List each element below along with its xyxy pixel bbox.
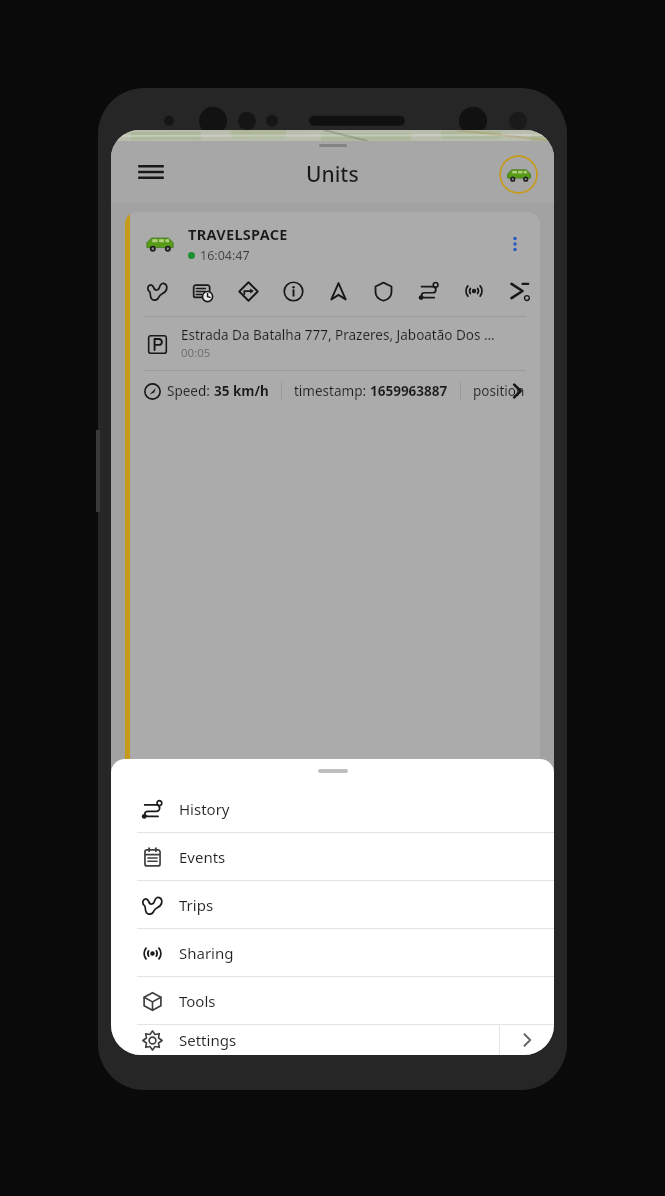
button[interactable]: History bbox=[111, 785, 554, 832]
staticText: 1659963887 bbox=[370, 382, 448, 400]
button[interactable]: info bbox=[276, 274, 310, 308]
staticText: Tools bbox=[179, 991, 554, 1011]
staticText: 00:05 bbox=[181, 345, 211, 361]
button[interactable]: More options bbox=[500, 229, 530, 259]
button[interactable]: events bbox=[185, 274, 219, 308]
staticText: timestamp: bbox=[294, 382, 370, 400]
staticText: TRAVELSPACE bbox=[188, 224, 288, 244]
button[interactable]: nav bbox=[321, 274, 355, 308]
button[interactable]: shield bbox=[366, 274, 400, 308]
button[interactable]: Current unit bbox=[499, 155, 538, 194]
staticText: Settings bbox=[179, 1030, 499, 1050]
staticText: Estrada Da Batalha 777, Prazeres, Jaboat… bbox=[181, 326, 495, 344]
button[interactable]: Events bbox=[111, 833, 554, 880]
button[interactable]: Open navigation menu bbox=[131, 152, 171, 192]
button[interactable]: Tools bbox=[111, 977, 554, 1024]
staticText: History bbox=[179, 799, 554, 819]
button[interactable]: Settings bbox=[111, 1025, 554, 1055]
staticText: 35 km/h bbox=[214, 382, 269, 400]
button[interactable]: share bbox=[457, 274, 491, 308]
staticText: Trips bbox=[179, 895, 554, 915]
button[interactable]: TRAVELSPACE bbox=[125, 212, 540, 1055]
staticText: position bbox=[473, 382, 525, 400]
button[interactable]: trips bbox=[140, 274, 174, 308]
staticText: Sharing bbox=[179, 943, 554, 963]
button[interactable]: More sensors bbox=[502, 376, 532, 406]
button[interactable]: route bbox=[231, 274, 265, 308]
button[interactable]: history bbox=[412, 274, 446, 308]
button[interactable]: Sharing bbox=[111, 929, 554, 976]
button[interactable]: cmd bbox=[502, 274, 536, 308]
staticText: Speed: bbox=[167, 382, 214, 400]
staticText: 16:04:47 bbox=[200, 247, 250, 264]
staticText: Events bbox=[179, 847, 554, 867]
button[interactable]: Trips bbox=[111, 881, 554, 928]
staticText: Units bbox=[306, 160, 359, 189]
